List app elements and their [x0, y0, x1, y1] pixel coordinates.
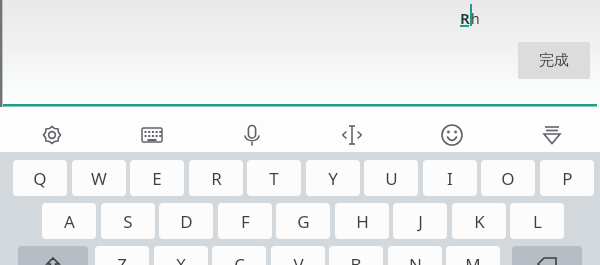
- button[interactable]: Emoji: [430, 113, 474, 157]
- staticText: X: [176, 253, 186, 265]
- staticText: T: [269, 167, 279, 190]
- button[interactable]: A: [42, 203, 96, 239]
- staticText: E: [152, 167, 162, 190]
- staticText: U: [385, 167, 398, 190]
- button[interactable]: K: [452, 203, 506, 239]
- staticText: W: [91, 167, 107, 190]
- button[interactable]: Switch keyboard: [130, 113, 174, 157]
- staticText: R: [211, 167, 222, 190]
- button[interactable]: Settings: [30, 113, 74, 157]
- button[interactable]: O: [481, 160, 535, 196]
- staticText: F: [241, 210, 250, 233]
- staticText: R: [460, 8, 470, 28]
- button[interactable]: S: [101, 203, 155, 239]
- button[interactable]: Voice input: [230, 113, 274, 157]
- button[interactable]: C: [212, 246, 266, 265]
- button[interactable]: Move cursor: [330, 113, 374, 157]
- button[interactable]: V: [271, 246, 325, 265]
- staticText: N: [409, 253, 422, 265]
- staticText: B: [350, 253, 362, 265]
- button[interactable]: B: [329, 246, 383, 265]
- staticText: G: [297, 210, 310, 233]
- staticText: O: [501, 167, 515, 190]
- button[interactable]: I: [423, 160, 477, 196]
- staticText: I: [447, 167, 453, 190]
- button[interactable]: H: [335, 203, 389, 239]
- button[interactable]: 完成: [518, 42, 590, 79]
- button[interactable]: W: [72, 160, 126, 196]
- staticText: Q: [33, 167, 47, 190]
- button[interactable]: Hide keyboard: [530, 113, 574, 157]
- staticText: C: [234, 253, 245, 265]
- staticText: D: [180, 210, 193, 233]
- button[interactable]: P: [540, 160, 594, 196]
- button[interactable]: M: [446, 246, 500, 265]
- staticText: Y: [328, 167, 338, 190]
- staticText: P: [562, 167, 573, 190]
- staticText: L: [533, 210, 542, 233]
- button[interactable]: X: [154, 246, 208, 265]
- button[interactable]: E: [130, 160, 184, 196]
- staticText: K: [474, 210, 485, 233]
- button[interactable]: Q: [13, 160, 67, 196]
- staticText: S: [123, 210, 133, 233]
- staticText: h: [471, 9, 480, 28]
- button[interactable]: G: [276, 203, 330, 239]
- button[interactable]: Z: [95, 246, 149, 265]
- staticText: V: [293, 253, 304, 265]
- staticText: M: [465, 253, 481, 265]
- staticText: J: [418, 210, 423, 233]
- button[interactable]: T: [247, 160, 301, 196]
- staticText: H: [356, 210, 369, 233]
- button[interactable]: U: [364, 160, 418, 196]
- button[interactable]: L: [510, 203, 564, 239]
- button[interactable]: Shift: [18, 246, 88, 265]
- button[interactable]: N: [388, 246, 442, 265]
- staticText: Z: [117, 253, 127, 265]
- staticText: A: [64, 210, 75, 233]
- button[interactable]: R: [189, 160, 243, 196]
- button[interactable]: D: [159, 203, 213, 239]
- button[interactable]: Y: [306, 160, 360, 196]
- button[interactable]: J: [393, 203, 447, 239]
- staticText: 完成: [539, 51, 569, 70]
- button[interactable]: Backspace: [512, 246, 582, 265]
- button[interactable]: F: [218, 203, 272, 239]
